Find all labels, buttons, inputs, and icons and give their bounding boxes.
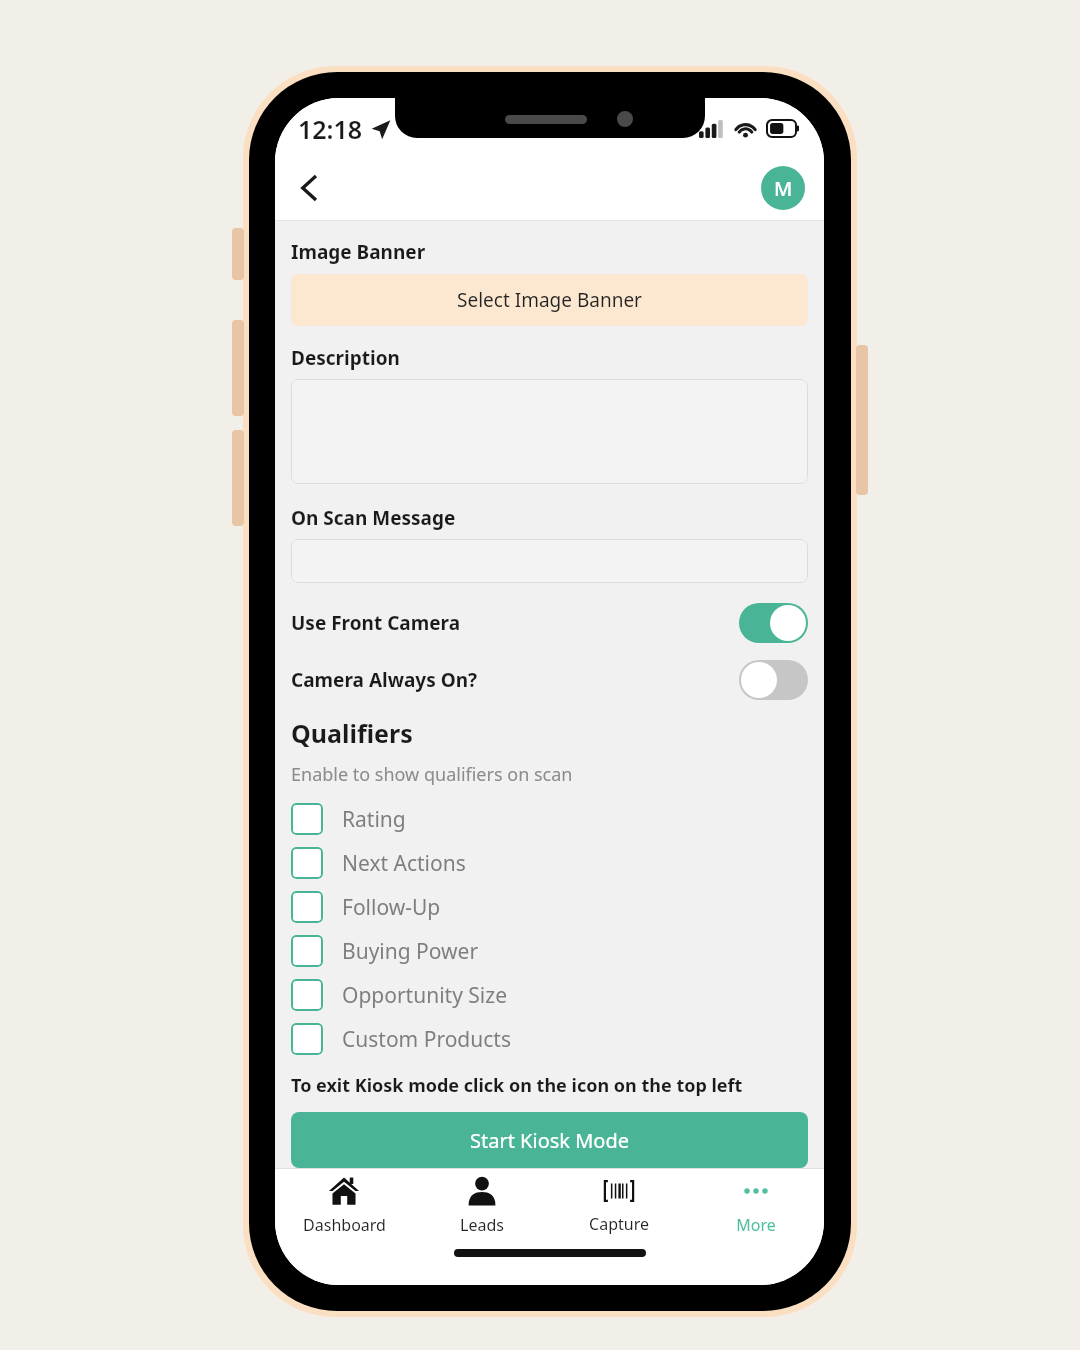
staticText: Buying Power — [342, 937, 479, 966]
button[interactable]: More — [687, 1169, 824, 1241]
button[interactable]: Camera Always On? — [291, 658, 808, 702]
staticText: Qualifiers — [291, 716, 413, 750]
button[interactable]: Custom Products — [291, 1017, 808, 1061]
staticText: 12:18 — [298, 112, 363, 146]
button[interactable]: Dashboard — [275, 1169, 413, 1241]
button[interactable]: Opportunity Size — [291, 973, 808, 1017]
button[interactable] — [291, 379, 808, 484]
button[interactable]: Profile — [761, 166, 805, 210]
staticText: Image Banner — [291, 239, 426, 265]
staticText: Opportunity Size — [342, 981, 507, 1010]
staticText: Capture — [589, 1213, 649, 1235]
button[interactable]: Next Actions — [291, 841, 808, 885]
staticText: Custom Products — [342, 1025, 511, 1054]
staticText: M — [774, 175, 793, 202]
staticText: Next Actions — [342, 849, 466, 878]
staticText: Use Front Camera — [291, 610, 739, 636]
staticText: To exit Kiosk mode click on the icon on … — [291, 1073, 743, 1098]
staticText: Dashboard — [303, 1214, 386, 1236]
staticText: On Scan Message — [291, 505, 456, 531]
button[interactable]: Capture — [550, 1169, 687, 1241]
button[interactable]: Rating — [291, 797, 808, 841]
button[interactable]: Follow-Up — [291, 885, 808, 929]
button[interactable]: Use Front Camera — [291, 601, 808, 645]
button[interactable]: Buying Power — [291, 929, 808, 973]
staticText: Select Image Banner — [457, 287, 642, 313]
staticText: Follow-Up — [342, 893, 441, 922]
button[interactable]: Start Kiosk Mode — [291, 1112, 808, 1168]
button[interactable]: Leads — [413, 1169, 550, 1241]
staticText: Start Kiosk Mode — [470, 1127, 630, 1154]
staticText: More — [736, 1214, 776, 1236]
staticText: Camera Always On? — [291, 667, 739, 693]
button[interactable] — [291, 539, 808, 583]
staticText: Leads — [460, 1214, 504, 1236]
staticText: Description — [291, 345, 400, 371]
staticText: Enable to show qualifiers on scan — [291, 762, 573, 787]
button[interactable]: Select Image Banner — [291, 274, 808, 326]
staticText: Rating — [342, 805, 406, 834]
button[interactable]: Back — [283, 162, 335, 214]
